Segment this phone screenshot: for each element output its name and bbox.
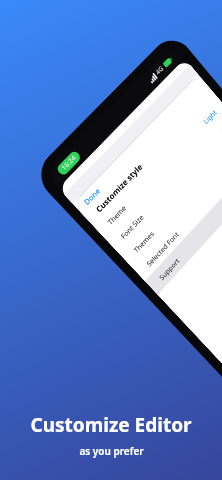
button[interactable]: Theme [93, 96, 222, 240]
staticText: Customize style [94, 161, 145, 215]
staticText: 4G [154, 64, 166, 77]
staticText: Selected Font [145, 229, 181, 268]
staticText: as you prefer [79, 444, 144, 458]
button[interactable]: Done [81, 185, 102, 207]
staticText: Done [81, 185, 102, 207]
staticText: Light [173, 98, 186, 112]
button[interactable]: Dark [156, 109, 176, 130]
staticText: Font Size [119, 212, 146, 241]
button[interactable]: Default [138, 122, 162, 148]
button[interactable]: Light [169, 94, 189, 116]
button[interactable]: Themes [119, 124, 222, 267]
staticText: 16:24 [59, 153, 78, 173]
button[interactable]: Support [145, 152, 222, 295]
staticText: Theme [106, 203, 128, 227]
button[interactable]: Selected Font [132, 138, 222, 281]
staticText: Themes [132, 229, 156, 255]
staticText: Light [202, 107, 218, 126]
staticText: Customize Editor [30, 412, 192, 438]
staticText: Default [142, 126, 159, 144]
staticText: 16 [219, 122, 222, 134]
staticText: Support [157, 256, 181, 282]
button[interactable]: Font Size [106, 110, 222, 254]
